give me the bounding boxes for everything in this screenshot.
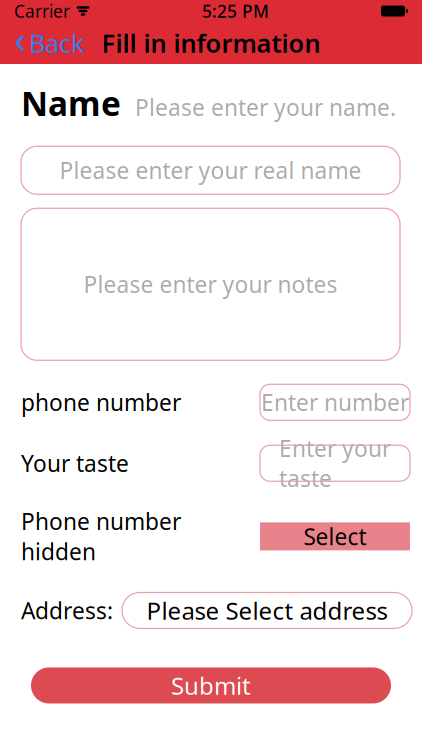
staticText: Name bbox=[21, 81, 121, 125]
button[interactable]: Submit bbox=[31, 667, 391, 703]
staticText: Please enter your real name bbox=[59, 155, 361, 185]
button[interactable]: Please enter your real name bbox=[21, 146, 400, 194]
button[interactable]: Enter number bbox=[260, 384, 410, 420]
button[interactable]: Please enter your notes bbox=[21, 208, 400, 360]
staticText: Please enter your notes bbox=[83, 269, 337, 299]
staticText: Enter number bbox=[261, 387, 409, 417]
staticText: Address: bbox=[21, 595, 113, 625]
button[interactable]: Select bbox=[260, 522, 410, 550]
staticText: Your taste bbox=[21, 448, 129, 478]
staticText: Please Select address bbox=[146, 594, 387, 626]
button[interactable]: Enter your taste bbox=[260, 445, 410, 481]
staticText: Submit bbox=[171, 669, 251, 701]
staticText: phone number bbox=[21, 387, 181, 417]
staticText: Enter your taste bbox=[279, 433, 391, 493]
staticText: Carrier bbox=[14, 0, 70, 22]
staticText: Select bbox=[303, 521, 366, 551]
staticText: 5:25 PM bbox=[202, 0, 269, 22]
button[interactable]: Back bbox=[0, 20, 85, 66]
staticText: Back bbox=[29, 26, 85, 60]
staticText: Fill in information bbox=[101, 26, 320, 60]
button[interactable]: Please Select address bbox=[122, 592, 412, 628]
staticText: Phone number hidden bbox=[21, 506, 181, 566]
staticText: Please enter your name. bbox=[135, 92, 396, 122]
